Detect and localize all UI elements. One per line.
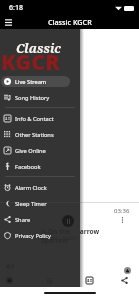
staticText: Share — [15, 216, 31, 224]
button[interactable]: Share — [1, 214, 70, 225]
button[interactable]: Open navigation drawer — [2, 16, 15, 29]
button[interactable]: Facebook — [1, 161, 70, 172]
button[interactable]: Other Stations — [1, 129, 70, 140]
staticText: Classic — [16, 40, 61, 57]
staticText: is On the Sparrow — [41, 227, 80, 245]
staticText: Classic KGCR — [48, 17, 92, 27]
button[interactable]: Privacy Policy — [1, 230, 70, 241]
staticText: 03:36 — [114, 207, 130, 215]
staticText: Simon - Smith — [41, 234, 78, 242]
button[interactable]: Cast — [123, 266, 132, 275]
button[interactable]: Sleep Timer — [1, 198, 70, 209]
button[interactable]: Share — [120, 276, 129, 285]
staticText: Info & Contact — [15, 115, 54, 123]
staticText: is On the Sparrow — [41, 227, 100, 236]
button[interactable]: Album art — [85, 276, 94, 285]
button[interactable]: Live Stream — [1, 76, 70, 87]
staticText: KGCR — [1, 47, 60, 73]
button[interactable]: Equalizer — [45, 276, 54, 285]
staticText: Live Stream — [15, 78, 47, 86]
staticText: 6:18 — [9, 3, 23, 13]
staticText: Privacy Policy — [15, 232, 51, 240]
staticText: Other Stations — [15, 131, 54, 139]
button[interactable]: Info & Contact — [1, 113, 70, 124]
staticText: Sleep Timer — [15, 200, 47, 208]
button[interactable]: Alarm Clock — [1, 182, 70, 193]
staticText: Alarm Clock — [15, 184, 47, 192]
button[interactable]: Pause — [62, 215, 74, 227]
button[interactable]: More options — [118, 215, 127, 224]
button[interactable]: Give Online — [1, 145, 70, 156]
button[interactable]: Song History — [1, 92, 70, 103]
staticText: Facebook — [15, 163, 41, 171]
staticText: Song History — [15, 94, 50, 102]
staticText: Simon - Smith — [41, 234, 78, 242]
button[interactable]: Record — [5, 276, 14, 285]
button[interactable]: Volume — [5, 262, 14, 271]
staticText: Give Online — [15, 147, 46, 155]
